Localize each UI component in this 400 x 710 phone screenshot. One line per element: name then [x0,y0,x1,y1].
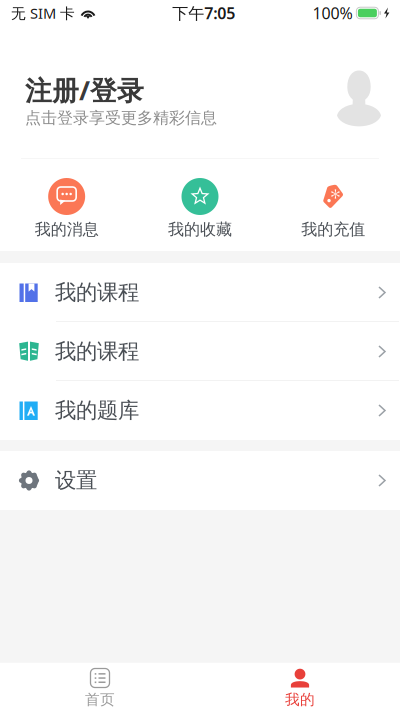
staticText: 注册/登录 [25,72,144,108]
button[interactable]: 我的 [200,662,400,710]
staticText: 设置 [55,467,97,494]
button[interactable]: 我的课程 [0,263,400,322]
button[interactable]: 我的消息 [0,160,133,251]
staticText: 无 SIM 卡 [11,3,75,23]
button[interactable]: 我的收藏 [133,160,267,251]
staticText: 点击登录享受更多精彩信息 [25,108,217,128]
staticText: 首页 [85,690,115,708]
button[interactable]: 首页 [0,662,200,710]
staticText: 100% [312,2,352,24]
staticText: 我的课程 [55,338,139,365]
staticText: 我的收藏 [168,220,232,239]
staticText: 我的题库 [55,397,139,424]
button[interactable]: 我的充值 [267,160,400,251]
staticText: 我的课程 [55,279,139,306]
staticText: 下午7:05 [172,2,235,24]
staticText: 我的 [285,690,315,708]
button[interactable]: 设置 [0,451,400,510]
button[interactable]: 我的课程 [0,322,400,381]
staticText: 我的消息 [35,220,99,239]
staticText: 我的充值 [301,220,365,239]
button[interactable]: 我的题库 [0,381,400,440]
